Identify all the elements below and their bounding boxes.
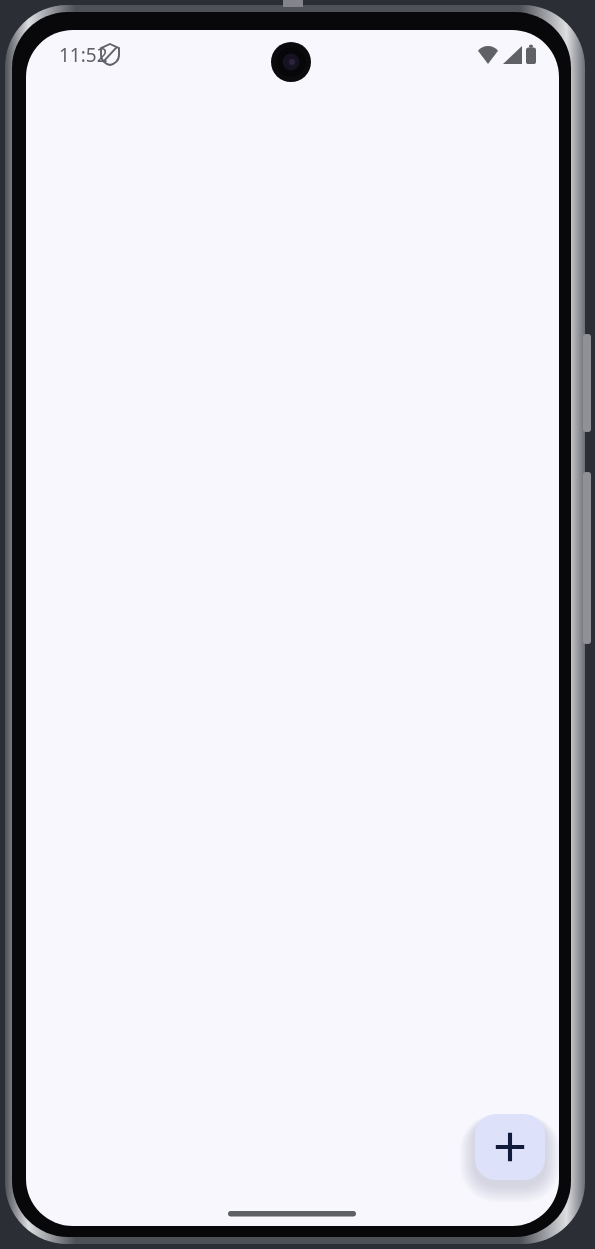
button[interactable]: Add [475,1114,545,1180]
staticText: 11:52 [59,42,108,68]
